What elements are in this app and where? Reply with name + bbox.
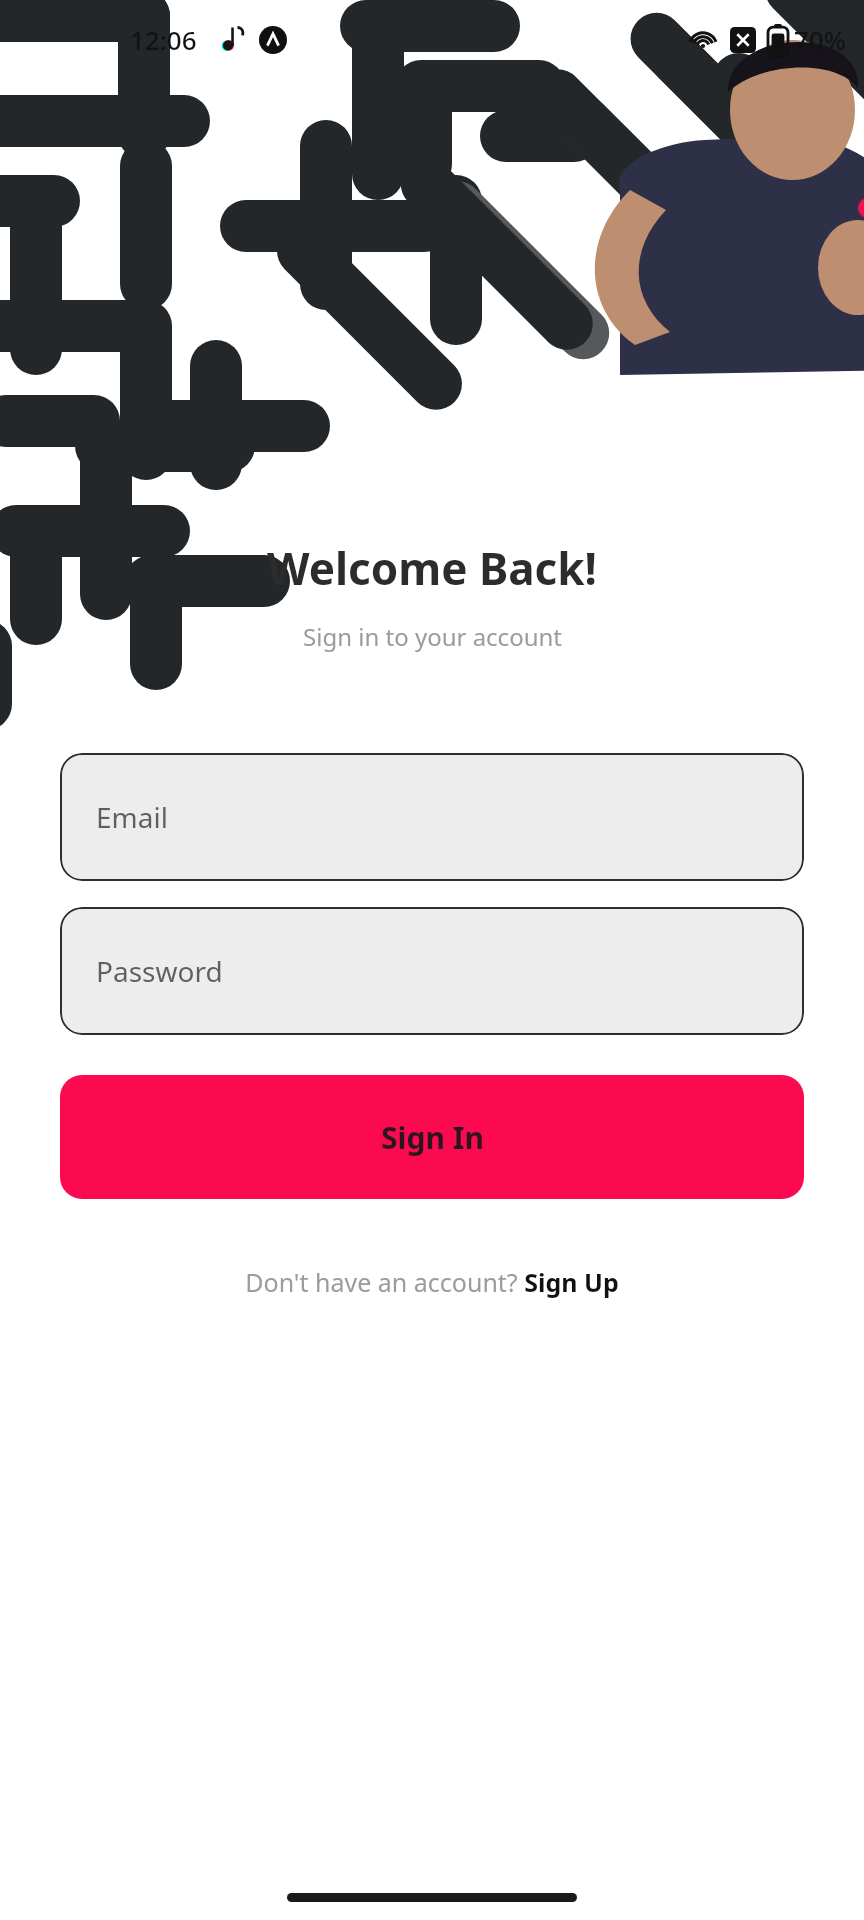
staticText: Email (96, 798, 168, 836)
staticText: Don't have an account? Sign Up (245, 1265, 619, 1299)
staticText: 70% (794, 22, 846, 57)
staticText: 12:06 (130, 22, 197, 57)
button[interactable]: Password (60, 907, 804, 1035)
staticText: Welcome Back! (267, 538, 597, 598)
button[interactable]: Email (60, 753, 804, 881)
staticText: Password (96, 952, 223, 990)
button[interactable]: Don't have an account? Sign Up (237, 1259, 627, 1305)
button[interactable]: Sign In (60, 1075, 804, 1199)
staticText: Sign in to your account (303, 620, 562, 653)
staticText: Sign In (381, 1117, 484, 1158)
